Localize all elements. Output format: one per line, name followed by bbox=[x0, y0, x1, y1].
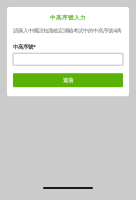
staticText: 送信 bbox=[63, 77, 73, 83]
staticText: 中高序號入力 bbox=[50, 14, 86, 21]
button[interactable]: 送信 bbox=[13, 73, 123, 87]
staticText: 請購入中國語知識檢定測驗考試中的中高序號4碼 bbox=[13, 27, 121, 34]
staticText: 中高序號* bbox=[13, 43, 36, 50]
